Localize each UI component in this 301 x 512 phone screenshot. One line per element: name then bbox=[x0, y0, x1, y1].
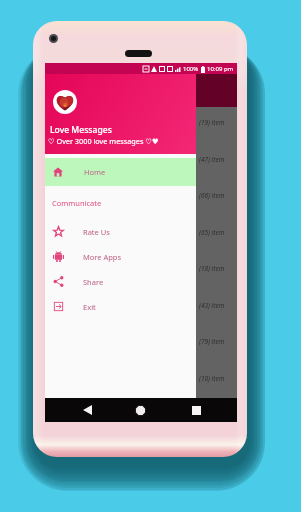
button[interactable]: Home bbox=[45, 158, 196, 186]
staticText: (66) item bbox=[199, 191, 225, 200]
staticText: Home bbox=[84, 167, 106, 177]
button[interactable]: Home bbox=[128, 398, 152, 422]
button[interactable]: Share bbox=[45, 269, 196, 294]
button[interactable]: (79) item bbox=[45, 326, 237, 363]
staticText: Exit bbox=[83, 302, 96, 312]
button[interactable]: Rate Us bbox=[45, 219, 196, 244]
button[interactable]: (18) item bbox=[45, 253, 237, 290]
staticText: (19) item bbox=[199, 118, 225, 127]
staticText: Love Messages bbox=[50, 124, 112, 136]
button[interactable]: (65) item bbox=[45, 217, 237, 254]
button[interactable]: (10) item bbox=[45, 363, 237, 400]
staticText: ♡ Over 3000 love messages ♡♥ bbox=[48, 136, 159, 146]
staticText: Communicate bbox=[52, 198, 102, 208]
button[interactable]: Exit bbox=[45, 294, 196, 319]
staticText: 100% bbox=[183, 65, 199, 73]
button[interactable]: (43) item bbox=[45, 290, 237, 327]
button[interactable]: (47) item bbox=[45, 144, 237, 181]
staticText: Share bbox=[83, 277, 104, 287]
staticText: (47) item bbox=[199, 155, 225, 164]
button[interactable]: Back bbox=[75, 398, 99, 422]
button[interactable]: (19) item bbox=[45, 107, 237, 144]
button[interactable]: (66) item bbox=[45, 180, 237, 217]
staticText: (18) item bbox=[199, 264, 225, 273]
button[interactable]: More Apps bbox=[45, 244, 196, 269]
staticText: (10) item bbox=[199, 374, 225, 383]
staticText: More Apps bbox=[83, 252, 122, 262]
staticText: (43) item bbox=[199, 301, 225, 310]
staticText: (79) item bbox=[199, 337, 225, 346]
staticText: 10:09 pm bbox=[207, 65, 234, 73]
staticText: (65) item bbox=[199, 228, 225, 237]
button[interactable]: Recent apps bbox=[184, 398, 208, 422]
staticText: Rate Us bbox=[83, 227, 110, 237]
